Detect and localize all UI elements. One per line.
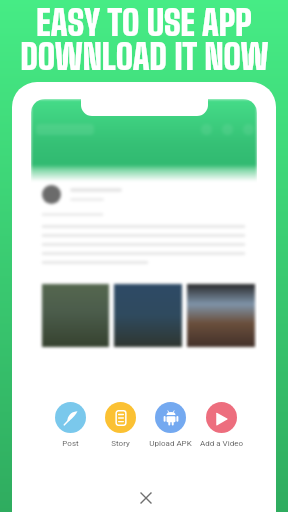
staticText: Upload APK <box>149 439 192 448</box>
staticText: Add a Video <box>200 439 243 448</box>
button[interactable]: Post <box>45 402 95 448</box>
staticText: EASY TO USE APP <box>36 2 252 44</box>
button[interactable]: Close <box>130 482 161 512</box>
button[interactable]: Add a Video <box>196 402 247 448</box>
staticText: Post <box>62 439 79 448</box>
staticText: Story <box>111 439 130 448</box>
staticText: DOWNLOAD IT NOW <box>20 36 269 78</box>
button[interactable]: Story <box>95 402 145 448</box>
button[interactable]: Upload APK <box>145 402 196 448</box>
